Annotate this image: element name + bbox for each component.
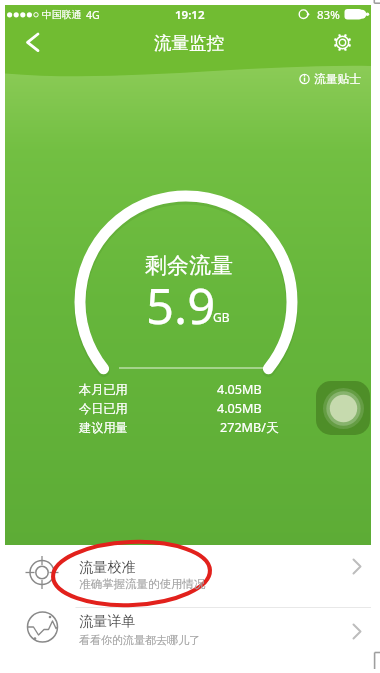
staticText: 4G [86, 8, 100, 22]
staticText: 流量监控 [154, 32, 224, 54]
staticText: 4.05MB [217, 381, 262, 398]
staticText: 今日已用 [79, 401, 128, 416]
staticText: 剩余流量 [145, 252, 233, 280]
staticText: 272MB/天 [220, 419, 279, 436]
staticText: 流量贴士 [314, 72, 362, 87]
staticText: 流量详单 [79, 612, 136, 630]
staticText: 中国联通 [42, 9, 82, 21]
staticText: 5.9 [146, 272, 216, 339]
staticText: 建议用量 [79, 420, 128, 435]
staticText: GB [213, 309, 230, 325]
staticText: 83% [317, 7, 340, 23]
staticText: 准确掌握流量的使用情况 [79, 577, 206, 591]
staticText: 看看你的流量都去哪儿了 [79, 633, 200, 647]
staticText: 19:12 [175, 7, 205, 23]
staticText: 4.05MB [217, 400, 262, 417]
staticText: 流量校准 [79, 558, 136, 576]
staticText: 本月已用 [79, 382, 128, 397]
